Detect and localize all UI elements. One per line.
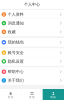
staticText: 我的钱包 [8,40,24,45]
staticText: 关于我们 [8,78,24,83]
button[interactable]: 账号安全 [0,48,64,57]
button[interactable]: 帮助中心 [0,67,64,76]
button[interactable]: 首页 [0,89,21,100]
button[interactable]: 我的钱包 [0,38,64,46]
staticText: 收藏 [8,29,16,34]
button[interactable]: 关于我们 [0,76,64,85]
staticText: 个人资料 [8,12,24,17]
staticText: 个人中心 [24,2,40,7]
button[interactable]: 发现 [21,89,43,100]
button[interactable]: 收藏 [0,28,64,36]
button[interactable]: 隐私设置 [0,57,64,66]
staticText: 首页 [8,95,14,99]
button[interactable]: 个人资料 [0,10,64,19]
button[interactable]: 我的 [43,89,64,100]
button[interactable]: 消息通知 [0,19,64,27]
staticText: 我的 [50,95,56,99]
staticText: 消息通知 [8,21,24,26]
staticText: 账号安全 [8,50,24,55]
staticText: 隐私设置 [8,59,24,64]
staticText: 发现 [29,95,35,99]
staticText: 帮助中心 [8,69,24,74]
